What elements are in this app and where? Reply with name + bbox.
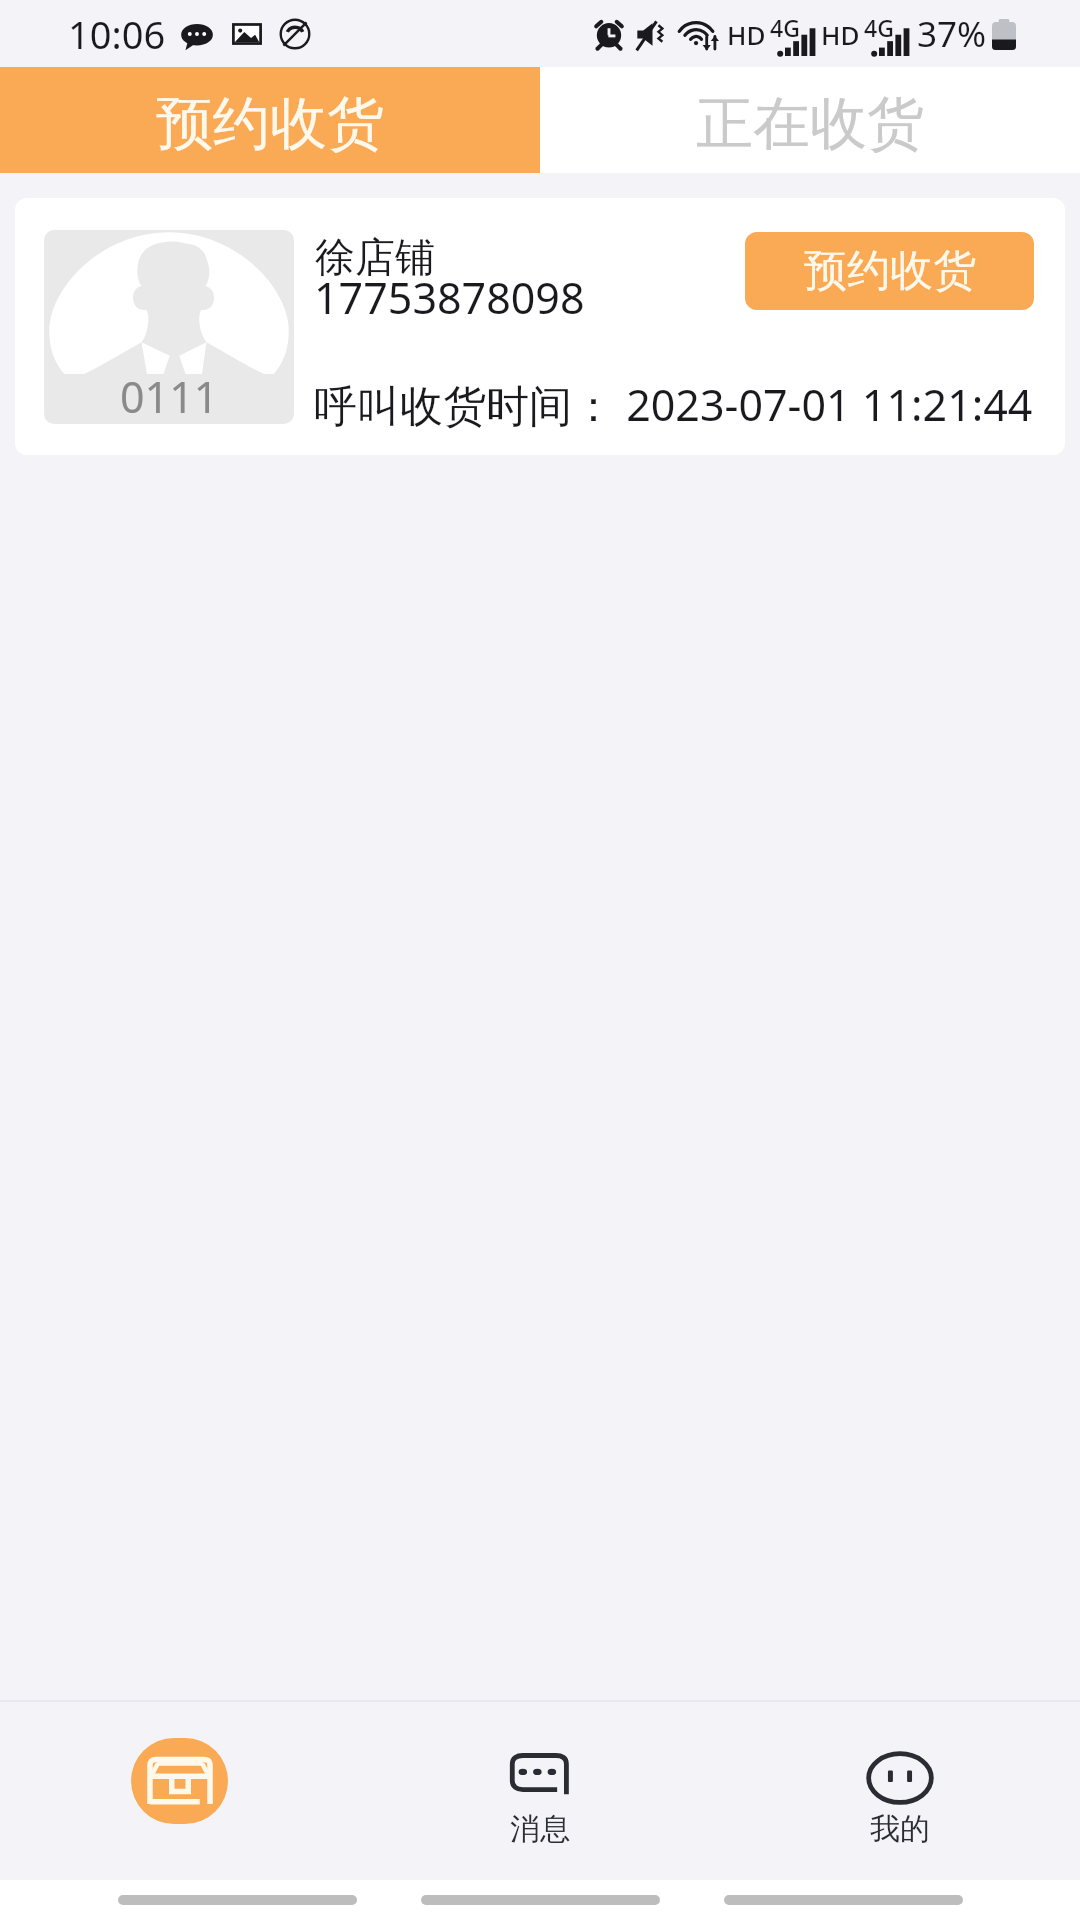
button[interactable]: 0111 — [15, 198, 1065, 455]
button[interactable]: 预约收货 — [0, 67, 540, 173]
staticText: 4G — [770, 12, 800, 43]
button[interactable]: 预约收货 — [745, 232, 1034, 310]
staticText: 预约收货 — [156, 88, 384, 160]
staticText: 17753878098 — [314, 268, 585, 327]
button[interactable]: 收货订单 — [0, 1700, 360, 1880]
button[interactable]: 我的 — [720, 1700, 1080, 1880]
staticText: 正在收货 — [696, 88, 924, 160]
staticText: 消息 — [510, 1810, 570, 1848]
staticText: 预约收货 — [804, 244, 976, 298]
staticText: 我的 — [870, 1810, 930, 1848]
staticText: 0111 — [120, 367, 219, 424]
button[interactable]: 消息 — [360, 1700, 720, 1880]
staticText: 徐店铺 — [315, 232, 435, 282]
staticText: HD — [821, 17, 860, 52]
button[interactable]: 正在收货 — [540, 67, 1080, 173]
staticText: 呼叫收货时间： 2023-07-01 11:21:44 — [314, 375, 1033, 434]
staticText: 10:06 — [68, 8, 166, 60]
staticText: 4G — [864, 12, 894, 43]
staticText: HD — [727, 17, 766, 52]
staticText: 37% — [917, 10, 987, 58]
